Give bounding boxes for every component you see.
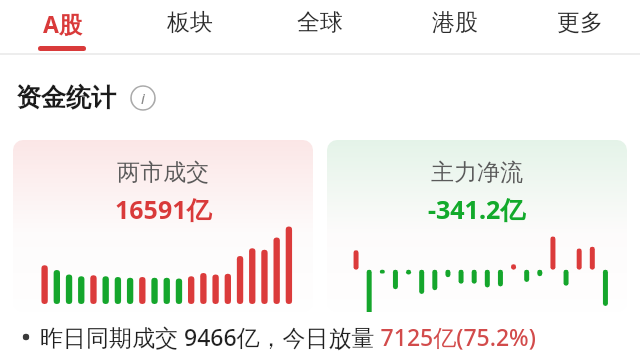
staticText: 板块: [167, 8, 213, 37]
staticText: 更多: [557, 8, 603, 37]
button[interactable]: Information: [128, 83, 158, 113]
button[interactable]: 全球: [270, 0, 370, 55]
staticText: -341.2亿: [428, 192, 526, 226]
staticText: 昨日同期成交 9466亿，今日放量 7125亿(75.2%): [40, 321, 536, 352]
staticText: A股: [43, 8, 82, 39]
button[interactable]: 港股: [405, 0, 505, 55]
button[interactable]: 主力净流: [327, 140, 627, 312]
staticText: 两市成交: [117, 158, 209, 187]
button[interactable]: 板块: [140, 0, 240, 55]
staticText: 资金统计: [16, 82, 116, 113]
button[interactable]: 更多: [530, 0, 630, 55]
staticText: i: [141, 88, 145, 108]
staticText: 全球: [297, 8, 343, 37]
button[interactable]: 两市成交: [13, 140, 313, 312]
button[interactable]: A股: [12, 0, 112, 55]
staticText: 主力净流: [431, 158, 523, 187]
staticText: 港股: [432, 8, 478, 37]
staticText: 16591亿: [115, 192, 212, 226]
button[interactable]: 昨日同期成交 9466亿，今日放量 7125亿(75.2%): [22, 312, 640, 361]
